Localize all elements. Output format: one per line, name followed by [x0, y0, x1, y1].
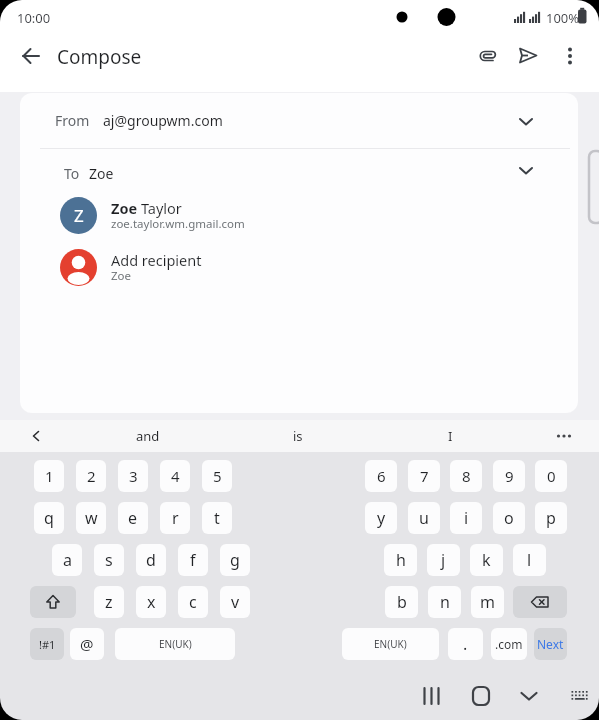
- button[interactable]: s: [94, 544, 124, 576]
- button[interactable]: 3: [118, 460, 148, 492]
- button[interactable]: v: [220, 586, 250, 618]
- staticText: y: [377, 507, 386, 529]
- button[interactable]: 0: [535, 460, 567, 492]
- button[interactable]: w: [76, 502, 106, 534]
- staticText: w: [85, 507, 98, 529]
- staticText: o: [504, 507, 514, 529]
- button[interactable]: [408, 674, 456, 718]
- staticText: 5: [213, 466, 222, 486]
- button[interactable]: l: [513, 544, 546, 576]
- button[interactable]: i: [450, 502, 482, 534]
- staticText: 1: [45, 466, 54, 486]
- button[interactable]: [505, 674, 553, 718]
- staticText: 3: [129, 466, 138, 486]
- staticText: Add recipient: [111, 250, 202, 270]
- button[interactable]: t: [202, 502, 232, 534]
- button[interactable]: and: [88, 420, 208, 452]
- button[interactable]: d: [136, 544, 166, 576]
- button[interactable]: [540, 420, 588, 452]
- staticText: z: [105, 591, 113, 613]
- button[interactable]: 7: [408, 460, 440, 492]
- staticText: f: [190, 549, 196, 571]
- button[interactable]: [556, 674, 599, 718]
- staticText: 10:00: [17, 9, 51, 27]
- button[interactable]: From: [20, 93, 578, 148]
- button[interactable]: [517, 112, 535, 130]
- staticText: 4: [171, 466, 180, 486]
- button[interactable]: u: [408, 502, 440, 534]
- button[interactable]: n: [428, 586, 461, 618]
- button[interactable]: Next: [534, 628, 567, 660]
- button[interactable]: To: [20, 149, 578, 198]
- staticText: To: [64, 164, 80, 183]
- staticText: j: [441, 549, 446, 571]
- button[interactable]: e: [118, 502, 148, 534]
- staticText: d: [146, 549, 156, 571]
- button[interactable]: k: [470, 544, 503, 576]
- staticText: c: [189, 591, 197, 613]
- button[interactable]: 2: [76, 460, 106, 492]
- button[interactable]: a: [52, 544, 82, 576]
- staticText: 0: [547, 466, 556, 486]
- button[interactable]: q: [34, 502, 64, 534]
- button[interactable]: is: [238, 420, 358, 452]
- button[interactable]: 1: [34, 460, 64, 492]
- button[interactable]: [517, 161, 535, 179]
- button[interactable]: y: [365, 502, 397, 534]
- button[interactable]: r: [160, 502, 190, 534]
- staticText: Zoe: [89, 164, 114, 183]
- button[interactable]: I: [390, 420, 510, 452]
- button[interactable]: [10, 35, 52, 77]
- button[interactable]: 4: [160, 460, 190, 492]
- button[interactable]: [0, 420, 70, 452]
- staticText: Z: [74, 204, 84, 227]
- button[interactable]: [30, 586, 76, 618]
- button[interactable]: EN(UK): [342, 628, 439, 660]
- staticText: Zoe: [111, 268, 132, 284]
- staticText: x: [147, 591, 156, 613]
- button[interactable]: x: [136, 586, 166, 618]
- button[interactable]: Z: [20, 192, 578, 241]
- staticText: @: [80, 634, 94, 654]
- button[interactable]: p: [535, 502, 567, 534]
- staticText: i: [464, 507, 469, 529]
- button[interactable]: 9: [493, 460, 525, 492]
- button[interactable]: 6: [365, 460, 397, 492]
- button[interactable]: Add recipient: [20, 244, 578, 293]
- staticText: l: [527, 549, 532, 571]
- button[interactable]: o: [493, 502, 525, 534]
- button[interactable]: c: [178, 586, 208, 618]
- staticText: !#1: [39, 637, 56, 652]
- button[interactable]: m: [471, 586, 504, 618]
- staticText: a: [63, 549, 72, 571]
- staticText: v: [231, 591, 240, 613]
- button[interactable]: [508, 36, 548, 76]
- staticText: h: [396, 549, 406, 571]
- button[interactable]: [551, 36, 589, 76]
- staticText: 8: [462, 466, 471, 486]
- button[interactable]: z: [94, 586, 124, 618]
- staticText: b: [397, 591, 407, 613]
- button[interactable]: f: [178, 544, 208, 576]
- button[interactable]: EN(UK): [115, 628, 235, 660]
- staticText: EN(UK): [159, 637, 192, 651]
- staticText: u: [419, 507, 429, 529]
- button[interactable]: [513, 586, 567, 618]
- button[interactable]: .: [448, 628, 483, 660]
- button[interactable]: [457, 674, 505, 718]
- staticText: .: [463, 633, 468, 655]
- staticText: EN(UK): [374, 637, 407, 651]
- button[interactable]: !#1: [30, 628, 64, 660]
- button[interactable]: @: [70, 628, 104, 660]
- button[interactable]: j: [427, 544, 460, 576]
- button[interactable]: 8: [450, 460, 482, 492]
- button[interactable]: b: [385, 586, 418, 618]
- button[interactable]: 5: [202, 460, 232, 492]
- staticText: zoe.taylor.wm.gmail.com: [111, 216, 245, 232]
- staticText: s: [105, 549, 113, 571]
- button[interactable]: h: [384, 544, 417, 576]
- staticText: 6: [377, 466, 386, 486]
- button[interactable]: .com: [491, 628, 527, 660]
- button[interactable]: [468, 36, 508, 76]
- button[interactable]: g: [220, 544, 250, 576]
